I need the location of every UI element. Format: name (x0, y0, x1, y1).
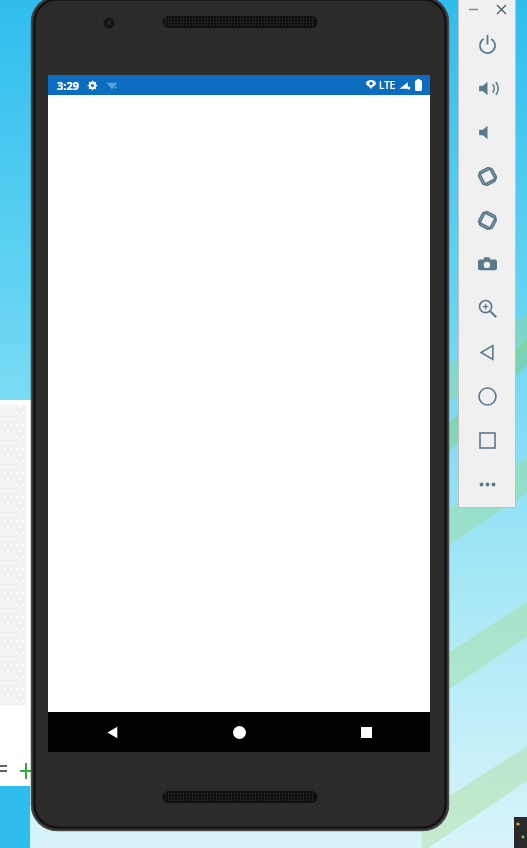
button[interactable]: Power (465, 22, 509, 66)
button[interactable]: Home (465, 374, 509, 418)
staticText: LTE (379, 78, 396, 92)
button[interactable]: Zoom (465, 286, 509, 330)
button[interactable]: Rotate left (465, 154, 509, 198)
button[interactable]: Back (465, 330, 509, 374)
button[interactable]: Back (48, 712, 176, 752)
button[interactable]: Minimize (466, 2, 480, 16)
button[interactable]: Take screenshot (465, 242, 509, 286)
button[interactable]: Overview (303, 712, 430, 752)
other: Settings (87, 80, 98, 91)
button[interactable]: Rotate right (465, 198, 509, 242)
button[interactable]: Overview (465, 418, 509, 462)
button[interactable]: Home (176, 712, 303, 752)
button[interactable]: Volume up (465, 66, 509, 110)
staticText: 3:29 (57, 78, 79, 93)
button[interactable]: Volume down (465, 110, 509, 154)
button[interactable]: Close (494, 2, 508, 16)
button[interactable]: More (465, 462, 509, 506)
